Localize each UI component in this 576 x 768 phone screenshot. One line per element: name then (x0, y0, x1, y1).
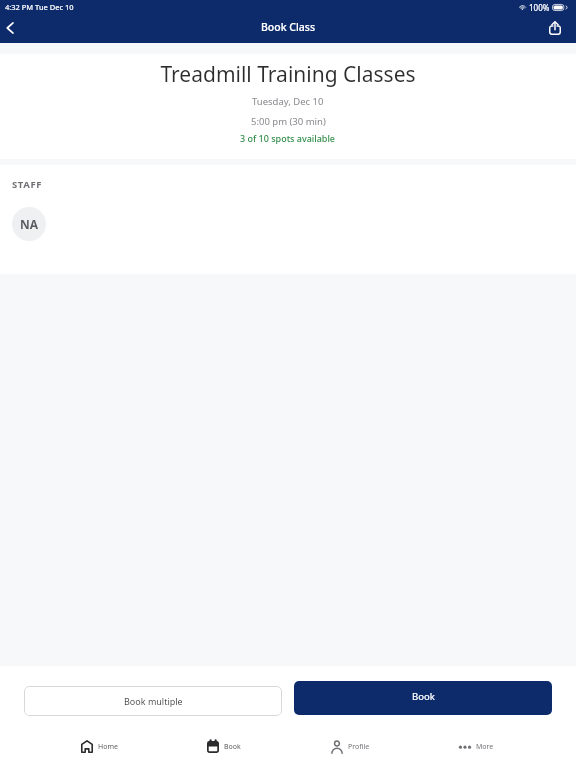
staticText: Book multiple (124, 695, 183, 707)
staticText: More (476, 742, 494, 752)
staticText: 5:00 pm (30 min) (251, 115, 326, 128)
button[interactable]: Book (294, 681, 552, 715)
staticText: STAFF (12, 178, 43, 191)
staticText: 100% (529, 2, 550, 13)
staticText: Treadmill Training Classes (160, 60, 416, 89)
staticText: Tuesday, Dec 10 (252, 95, 324, 108)
button[interactable]: Share (546, 14, 576, 43)
staticText: Profile (348, 742, 370, 752)
staticText: 3 of 10 spots available (240, 132, 336, 144)
button[interactable]: Back (0, 14, 22, 43)
staticText: NA (20, 216, 39, 232)
button[interactable]: Home (81, 729, 118, 764)
button[interactable]: Profile (331, 729, 370, 764)
button[interactable]: Book multiple (24, 686, 282, 716)
staticText: Book (412, 690, 435, 703)
staticText: 4:32 PM Tue Dec 10 (5, 2, 74, 12)
staticText: Book Class (261, 20, 316, 34)
button[interactable]: NA (12, 207, 46, 241)
button[interactable]: More (459, 729, 494, 764)
staticText: Book (224, 742, 241, 752)
staticText: Home (98, 742, 118, 752)
button[interactable]: Book (207, 729, 241, 764)
